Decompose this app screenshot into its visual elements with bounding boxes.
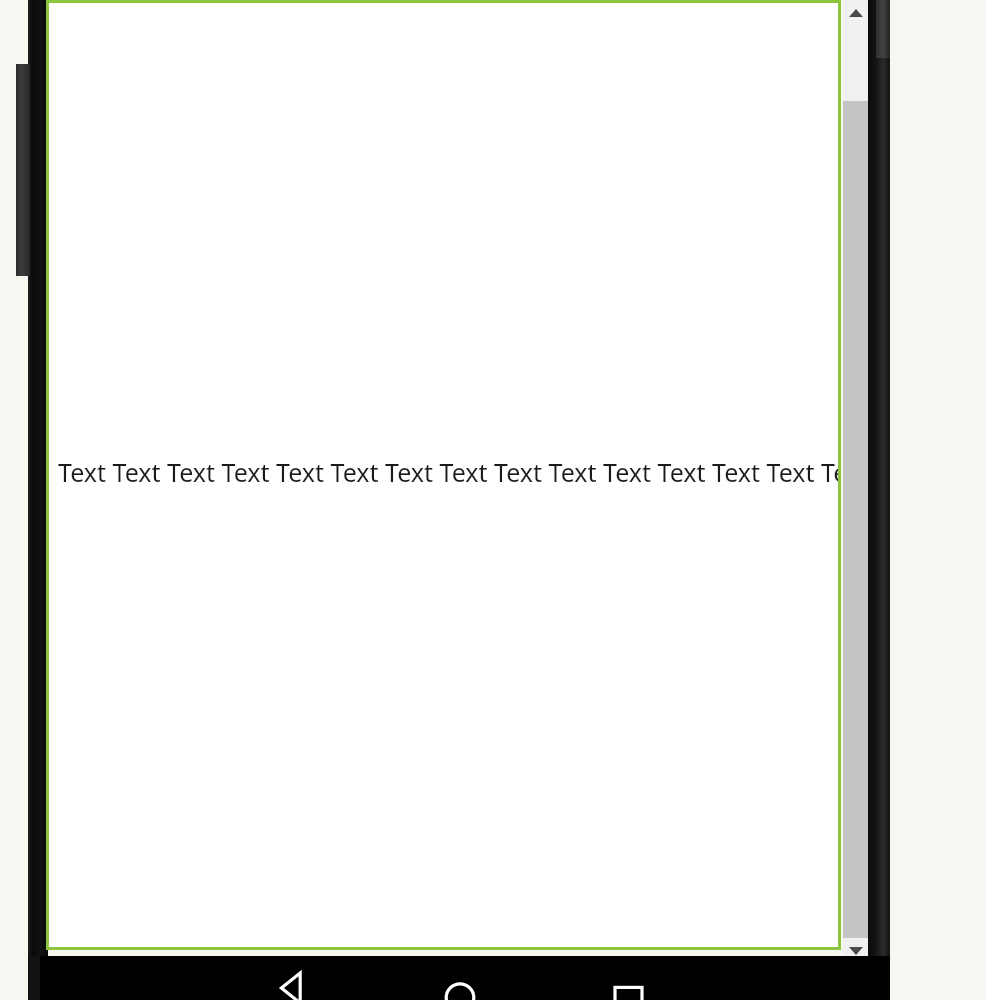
button[interactable]: Scroll up (843, 0, 868, 26)
button[interactable]: Scroll down (843, 938, 868, 963)
button[interactable]: Back (252, 956, 336, 1000)
button[interactable]: Recent apps (586, 956, 670, 1000)
staticText: Text Text Text Text Text Text Text Text … (58, 455, 841, 489)
button[interactable]: Home (418, 956, 502, 1000)
